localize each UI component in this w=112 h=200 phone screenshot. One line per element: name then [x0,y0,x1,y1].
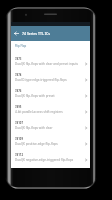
button[interactable]: 7476 [11,86,90,102]
staticText: 7495 [15,105,22,109]
staticText: Dual JK flip-flops with preset [15,94,55,98]
button[interactable]: 74109 [11,134,90,150]
staticText: 74109 [15,137,23,141]
staticText: 74112 [15,153,23,157]
button[interactable]: 7473 [11,54,90,70]
button[interactable]: 74107 [11,118,90,134]
staticText: 74107 [15,121,23,125]
staticText: 74 Series TTL ICs [22,31,50,36]
staticText: Dual JK flip-flops with clear and preset… [15,62,78,66]
staticText: 7474 [15,73,22,77]
staticText: 4-bit parallel-access shift registers [15,110,63,114]
staticText: Dual JK negative-edge-triggered flip-flo… [15,158,74,162]
button[interactable]: 7495 [11,102,90,118]
button[interactable]: 74112 [11,150,90,166]
staticText: Dual D-type edge-triggered flip-flops [15,78,67,82]
staticText: Flip Flop [15,44,27,48]
staticText: Dual JK positive-edge flip-flops [15,142,58,146]
button[interactable]: 7474 [11,70,90,86]
staticText: 7473 [15,57,22,61]
staticText: Dual JK flip-flops with clear [15,126,53,130]
staticText: 7476 [15,89,22,93]
button[interactable]: Back [11,26,22,41]
